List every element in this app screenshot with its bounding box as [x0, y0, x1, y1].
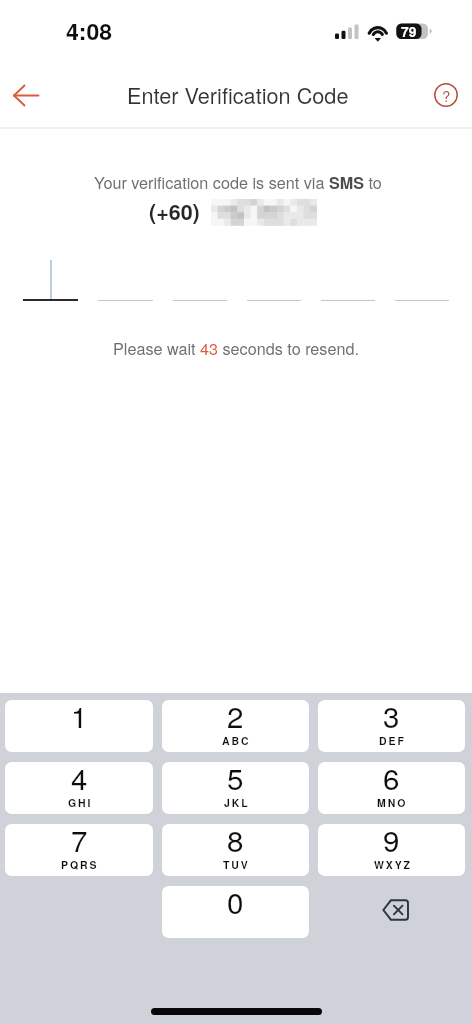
- staticText: 9: [383, 824, 400, 860]
- button[interactable]: 8: [162, 824, 309, 876]
- button[interactable]: [98, 257, 153, 301]
- staticText: DEF: [379, 733, 406, 748]
- button[interactable]: [247, 257, 301, 301]
- staticText: 4:08: [66, 14, 113, 47]
- button[interactable]: [321, 257, 375, 301]
- staticText: MNO: [377, 795, 408, 810]
- button[interactable]: Help: [422, 71, 470, 119]
- button[interactable]: [395, 257, 449, 301]
- staticText: PQRS: [61, 857, 99, 872]
- staticText: Please wait 43 seconds to resend.: [113, 336, 359, 359]
- button[interactable]: 1: [5, 700, 153, 752]
- staticText: 3: [383, 700, 400, 736]
- button[interactable]: 7: [5, 824, 153, 876]
- button[interactable]: 3: [318, 700, 465, 752]
- staticText: 6: [383, 762, 400, 798]
- button[interactable]: 9: [318, 824, 465, 876]
- button[interactable]: [23, 257, 78, 301]
- button[interactable]: Back: [0, 68, 54, 123]
- staticText: JKL: [224, 795, 250, 810]
- staticText: Your verification code is sent via SMS t…: [94, 170, 382, 194]
- button[interactable]: [173, 257, 227, 301]
- staticText: 5: [227, 762, 244, 798]
- staticText: 0: [227, 886, 244, 922]
- button[interactable]: Backspace: [318, 886, 465, 938]
- staticText: TUV: [223, 857, 250, 872]
- button[interactable]: 6: [318, 762, 465, 814]
- staticText: WXYZ: [374, 857, 412, 872]
- staticText: ABC: [222, 733, 251, 748]
- staticText: 79: [401, 21, 417, 41]
- staticText: 2: [227, 700, 244, 736]
- button[interactable]: 4: [5, 762, 153, 814]
- staticText: Enter Verification Code: [127, 79, 349, 110]
- button[interactable]: 2: [162, 700, 309, 752]
- staticText: (+60): [149, 196, 200, 227]
- staticText: 7: [71, 824, 88, 860]
- staticText: 1: [71, 700, 88, 736]
- staticText: 4: [71, 762, 88, 798]
- button[interactable]: 0: [162, 886, 309, 938]
- staticText: GHI: [68, 795, 93, 810]
- staticText: 8: [227, 824, 244, 860]
- button[interactable]: 5: [162, 762, 309, 814]
- staticText: ?: [442, 85, 451, 106]
